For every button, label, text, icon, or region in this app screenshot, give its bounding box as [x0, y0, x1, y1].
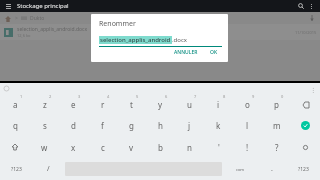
staticText: .: [271, 164, 273, 174]
staticText: k: [216, 120, 221, 131]
button[interactable]: ?123: [287, 158, 320, 180]
staticText: b: [158, 142, 163, 153]
staticText: t: [130, 99, 133, 110]
staticText: 2: [49, 94, 52, 99]
staticText: q: [13, 120, 18, 131]
button[interactable]: x: [59, 136, 88, 158]
staticText: a: [13, 99, 18, 110]
staticText: r: [101, 99, 105, 110]
button[interactable]: Search: [296, 1, 306, 11]
button[interactable]: v: [117, 136, 146, 158]
button[interactable]: w: [30, 136, 59, 158]
staticText: 6: [165, 94, 168, 99]
staticText: OK: [210, 49, 218, 56]
button[interactable]: n: [175, 136, 204, 158]
staticText: h: [158, 120, 163, 131]
button[interactable]: 7: [175, 94, 204, 115]
button[interactable]: Menu: [4, 2, 12, 10]
button[interactable]: Google: [3, 85, 10, 92]
button[interactable]: q: [0, 115, 30, 136]
button[interactable]: ?123: [0, 158, 33, 180]
button[interactable]: 4: [88, 94, 117, 115]
button[interactable]: d: [59, 115, 88, 136]
button[interactable]: com: [224, 158, 257, 180]
button[interactable]: 5: [117, 94, 146, 115]
button[interactable]: 6: [146, 94, 175, 115]
staticText: c: [101, 142, 105, 153]
staticText: com: [236, 167, 245, 172]
staticText: Renommer: [99, 19, 136, 29]
button[interactable]: f: [88, 115, 117, 136]
button[interactable]: b: [146, 136, 175, 158]
staticText: x: [71, 142, 76, 153]
staticText: selection_applis_android: [100, 36, 171, 44]
staticText: ?123: [298, 166, 309, 173]
staticText: n: [187, 142, 192, 153]
button[interactable]: 3: [59, 94, 88, 115]
button[interactable]: ANNULER: [170, 47, 202, 58]
button[interactable]: Delete: [291, 136, 320, 158]
staticText: 3: [78, 94, 81, 99]
button[interactable]: 2: [30, 94, 59, 115]
staticText: j: [188, 120, 191, 131]
button[interactable]: Shift: [0, 136, 30, 158]
staticText: i: [217, 99, 220, 110]
staticText: 4: [107, 94, 110, 99]
button[interactable]: m: [262, 115, 291, 136]
button[interactable]: selection_applis_android.docx: [0, 24, 320, 40]
staticText: m: [273, 120, 281, 131]
button[interactable]: More options: [306, 1, 316, 11]
button[interactable]: 1: [0, 94, 30, 115]
button[interactable]: Enter: [291, 115, 320, 136]
staticText: ?: [275, 142, 279, 153]
staticText: ANNULER: [174, 49, 198, 56]
button[interactable]: Home: [3, 14, 12, 23]
staticText: 7: [194, 94, 197, 99]
staticText: !: [246, 142, 249, 153]
staticText: e: [71, 99, 76, 110]
staticText: 5: [136, 94, 139, 99]
staticText: 11/10/2015: [295, 30, 317, 35]
staticText: p: [274, 99, 279, 110]
staticText: ⋮: [310, 86, 316, 93]
button[interactable]: ': [204, 136, 233, 158]
button[interactable]: 0: [262, 94, 291, 115]
staticText: z: [43, 99, 47, 110]
button[interactable]: j: [175, 115, 204, 136]
button[interactable]: g: [117, 115, 146, 136]
staticText: ': [218, 142, 220, 153]
button[interactable]: l: [233, 115, 262, 136]
staticText: 8: [223, 94, 226, 99]
button[interactable]: OK: [206, 47, 222, 58]
staticText: f: [101, 120, 104, 131]
button[interactable]: c: [88, 136, 117, 158]
button[interactable]: Expand suggestions: [309, 85, 317, 93]
staticText: .docx: [172, 36, 187, 44]
button[interactable]: k: [204, 115, 233, 136]
staticText: 9: [252, 94, 255, 99]
button[interactable]: ?: [262, 136, 291, 158]
staticText: v: [129, 142, 134, 153]
button[interactable]: 9: [233, 94, 262, 115]
button[interactable]: s: [30, 115, 59, 136]
staticText: >: [15, 15, 18, 22]
staticText: Stockage principal: [17, 2, 69, 10]
button[interactable]: Backspace: [291, 94, 320, 115]
staticText: w: [41, 142, 48, 153]
button[interactable]: h: [146, 115, 175, 136]
button[interactable]: !: [233, 136, 262, 158]
staticText: 12,6 ko: [17, 33, 31, 38]
staticText: 1: [20, 94, 23, 99]
button[interactable]: Sort: [307, 13, 317, 23]
staticText: y: [158, 99, 163, 110]
staticText: /: [47, 164, 50, 174]
staticText: ?123: [11, 166, 22, 173]
staticText: s: [43, 120, 47, 131]
button[interactable]: /: [33, 158, 63, 180]
staticText: Dukto: [30, 15, 45, 22]
staticText: 0: [281, 94, 284, 99]
staticText: g: [129, 120, 134, 131]
button[interactable]: 8: [204, 94, 233, 115]
